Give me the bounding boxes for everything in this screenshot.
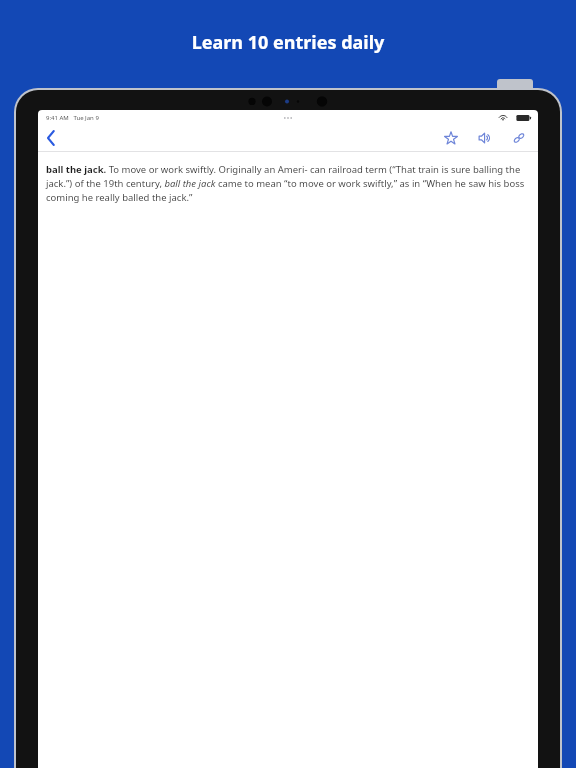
button[interactable]: Pronounce <box>474 127 496 149</box>
staticText: Learn 10 entries daily <box>0 30 576 55</box>
button[interactable]: Favorite <box>440 127 462 149</box>
button[interactable]: Copy link <box>508 127 530 149</box>
button[interactable]: Back <box>38 125 64 151</box>
staticText: ball the jack. To move or work swiftly. … <box>46 163 528 204</box>
staticText: 9:41 AM Tue Jan 9 <box>46 114 99 122</box>
